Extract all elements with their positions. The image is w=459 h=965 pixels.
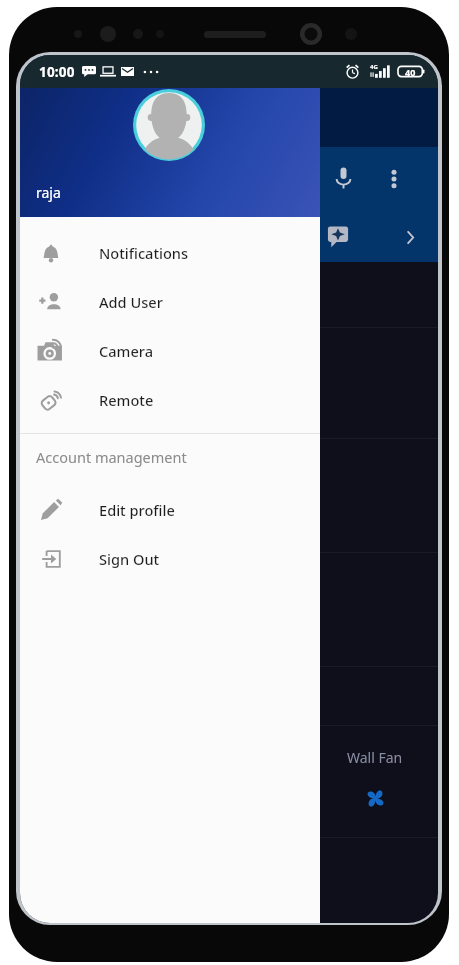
button[interactable]: Edit profile: [20, 485, 320, 534]
button[interactable]: Voice search: [323, 155, 363, 201]
staticText: Sign Out: [99, 549, 160, 569]
staticText: Notifications: [99, 243, 189, 263]
button[interactable]: Notifications: [20, 228, 320, 277]
staticText: Add User: [99, 292, 163, 312]
button[interactable]: Camera: [20, 326, 320, 375]
staticText: Remote: [99, 390, 154, 410]
button[interactable]: Remote: [20, 375, 320, 424]
staticText: Edit profile: [99, 500, 175, 520]
staticText: 4G: [370, 63, 378, 71]
staticText: raja: [36, 183, 61, 202]
staticText: 10:00: [39, 63, 75, 81]
button[interactable]: Wall Fan: [305, 726, 438, 837]
staticText: Camera: [99, 341, 154, 361]
button[interactable]: Assistant: [317, 215, 359, 258]
staticText: Account management: [36, 447, 187, 467]
button[interactable]: Sign Out: [20, 534, 320, 583]
staticText: Wall Fan: [347, 748, 403, 767]
staticText: 40: [405, 66, 416, 78]
button[interactable]: More options: [375, 157, 413, 201]
button[interactable]: Add User: [20, 277, 320, 326]
button[interactable]: Next: [391, 217, 429, 257]
